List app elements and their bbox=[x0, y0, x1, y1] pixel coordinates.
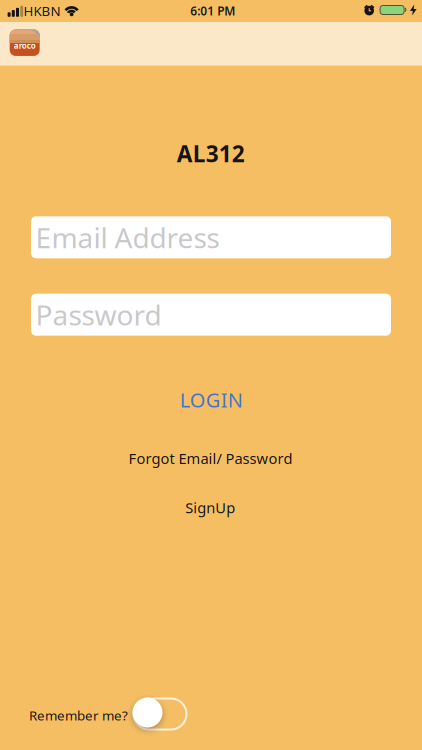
staticText: LOGIN bbox=[180, 386, 243, 413]
staticText: AL312 bbox=[177, 138, 245, 168]
button[interactable]: LOGIN bbox=[180, 386, 243, 413]
textField[interactable]: Email Address bbox=[31, 216, 391, 258]
staticText: Remember me? bbox=[29, 706, 128, 724]
button[interactable]: Forgot Email/ Password bbox=[129, 448, 293, 468]
staticText: 6:01 PM bbox=[190, 3, 235, 19]
staticText: HKBN bbox=[24, 2, 61, 20]
staticText: Forgot Email/ Password bbox=[129, 448, 293, 468]
secureTextField[interactable]: Password bbox=[31, 294, 391, 336]
staticText: Email Address bbox=[35, 219, 219, 256]
staticText: Password bbox=[35, 296, 161, 333]
button[interactable]: Remember me bbox=[133, 698, 186, 729]
button[interactable]: SignUp bbox=[185, 498, 235, 517]
staticText: aroco bbox=[14, 40, 36, 51]
staticText: SignUp bbox=[185, 498, 235, 517]
